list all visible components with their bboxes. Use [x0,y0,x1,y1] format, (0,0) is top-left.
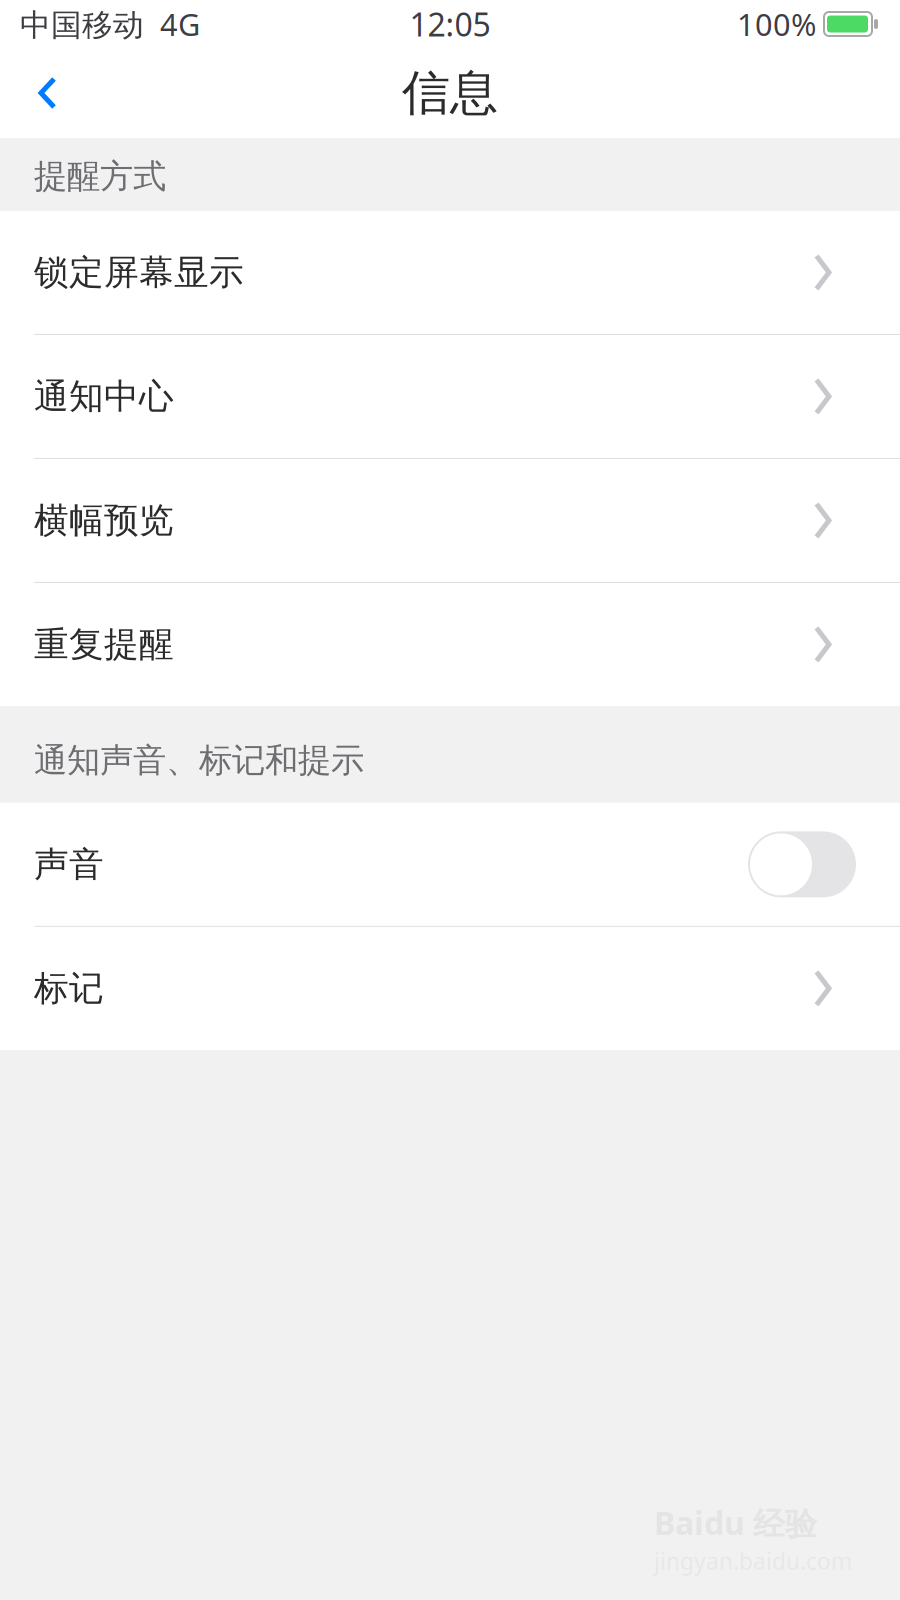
staticText: Baidu 经验 [654,1501,817,1544]
staticText: 100% [737,4,816,44]
button[interactable]: 标记 [0,927,900,1050]
button[interactable]: 重复提醒 [0,583,900,706]
button[interactable]: 横幅预览 [0,459,900,582]
button[interactable]: 锁定屏幕显示 [0,211,900,334]
staticText: 通知声音、标记和提示 [34,740,364,781]
staticText: 横幅预览 [34,499,174,542]
staticText: 信息 [402,63,498,122]
button[interactable]: 通知中心 [0,335,900,458]
staticText: jingyan.baidu.com [654,1546,852,1576]
staticText: 重复提醒 [34,623,174,666]
staticText: 锁定屏幕显示 [34,251,244,294]
staticText: 标记 [34,967,104,1010]
staticText: 通知中心 [34,375,174,418]
staticText: 12:05 [409,3,490,45]
staticText: 提醒方式 [34,156,166,197]
staticText: 声音 [34,843,104,886]
button[interactable]: 声音 [0,803,900,926]
button[interactable]: 返回 [0,59,79,127]
staticText: 中国移动 4G [20,4,200,44]
